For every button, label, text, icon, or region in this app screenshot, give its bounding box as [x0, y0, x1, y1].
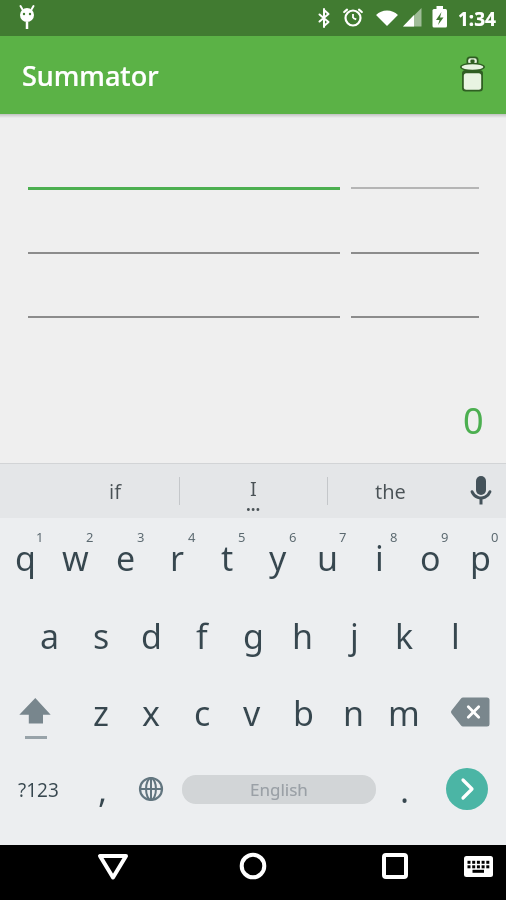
- staticText: 1:34: [458, 6, 496, 30]
- staticText: u: [317, 535, 339, 581]
- button[interactable]: z: [76, 689, 126, 737]
- staticText: z: [93, 690, 109, 736]
- button[interactable]: t: [202, 534, 252, 582]
- staticText: s: [93, 613, 110, 659]
- staticText: 3: [137, 528, 145, 546]
- button[interactable]: h: [278, 612, 328, 660]
- staticText: ,: [98, 767, 108, 813]
- button[interactable]: I: [198, 471, 308, 505]
- button[interactable]: ?123: [10, 770, 66, 810]
- button[interactable]: g: [228, 612, 278, 660]
- button[interactable]: .: [386, 766, 424, 814]
- staticText: k: [395, 613, 414, 659]
- button[interactable]: p: [455, 534, 505, 582]
- staticText: ?123: [18, 777, 59, 803]
- staticText: x: [142, 690, 160, 736]
- button[interactable]: a: [25, 612, 75, 660]
- staticText: 2: [86, 528, 94, 546]
- button[interactable]: k: [379, 612, 429, 660]
- staticText: 8: [390, 528, 398, 546]
- staticText: 1: [36, 528, 44, 546]
- staticText: English: [250, 778, 308, 801]
- button[interactable]: if: [60, 471, 170, 511]
- button[interactable]: v: [227, 689, 277, 737]
- button[interactable]: i: [354, 534, 404, 582]
- staticText: .: [400, 767, 410, 813]
- button[interactable]: n: [329, 689, 379, 737]
- button[interactable]: [446, 50, 498, 102]
- button[interactable]: r: [152, 534, 202, 582]
- button[interactable]: [83, 845, 143, 900]
- staticText: n: [343, 690, 365, 736]
- staticText: r: [170, 535, 185, 581]
- button[interactable]: q: [0, 534, 50, 582]
- staticText: v: [243, 690, 261, 736]
- button[interactable]: e: [101, 534, 151, 582]
- staticText: 4: [188, 528, 196, 546]
- button[interactable]: English: [182, 775, 376, 804]
- staticText: 6: [289, 528, 297, 546]
- staticText: b: [293, 690, 314, 736]
- button[interactable]: [130, 768, 172, 810]
- staticText: a: [40, 613, 60, 659]
- staticText: m: [388, 690, 420, 736]
- staticText: d: [141, 613, 162, 659]
- staticText: the: [375, 478, 406, 505]
- staticText: o: [420, 535, 441, 581]
- button[interactable]: m: [379, 689, 429, 737]
- staticText: p: [470, 535, 491, 581]
- button[interactable]: u: [303, 534, 353, 582]
- staticText: I: [250, 475, 257, 502]
- staticText: g: [243, 613, 264, 659]
- staticText: l: [451, 613, 460, 659]
- button[interactable]: [10, 689, 62, 741]
- staticText: if: [109, 478, 122, 505]
- staticText: y: [269, 535, 287, 581]
- staticText: h: [292, 613, 314, 659]
- button[interactable]: [455, 845, 499, 900]
- button[interactable]: [446, 768, 488, 810]
- staticText: w: [62, 535, 89, 581]
- button[interactable]: l: [430, 612, 480, 660]
- staticText: 9: [441, 528, 449, 546]
- button[interactable]: [365, 845, 425, 900]
- staticText: 0: [463, 396, 484, 438]
- button[interactable]: x: [126, 689, 176, 737]
- staticText: c: [194, 690, 211, 736]
- staticText: f: [196, 613, 208, 659]
- button[interactable]: s: [76, 612, 126, 660]
- button[interactable]: o: [405, 534, 455, 582]
- button[interactable]: w: [50, 534, 100, 582]
- staticText: 5: [238, 528, 246, 546]
- button[interactable]: the: [335, 471, 445, 511]
- button[interactable]: ,: [84, 766, 122, 814]
- staticText: j: [350, 613, 359, 659]
- button[interactable]: [223, 845, 283, 900]
- staticText: 7: [339, 528, 347, 546]
- staticText: 0: [491, 528, 499, 546]
- staticText: i: [375, 535, 384, 581]
- button[interactable]: [444, 689, 496, 737]
- staticText: e: [116, 535, 136, 581]
- button[interactable]: b: [278, 689, 328, 737]
- button[interactable]: c: [177, 689, 227, 737]
- button[interactable]: j: [329, 612, 379, 660]
- staticText: t: [221, 535, 234, 581]
- staticText: Summator: [22, 57, 159, 94]
- staticText: q: [15, 535, 36, 581]
- button[interactable]: y: [253, 534, 303, 582]
- button[interactable]: [460, 469, 502, 513]
- staticText: ...: [246, 493, 261, 515]
- button[interactable]: f: [177, 612, 227, 660]
- button[interactable]: d: [126, 612, 176, 660]
